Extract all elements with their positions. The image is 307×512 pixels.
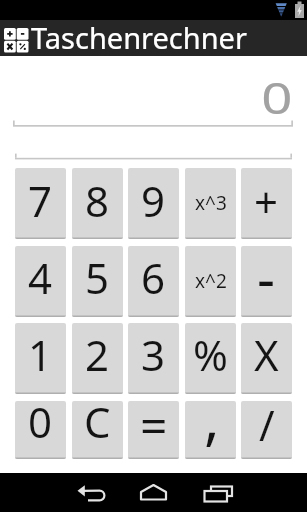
staticText: C <box>84 401 111 450</box>
staticText: / <box>259 401 275 453</box>
button[interactable]: 6 <box>128 246 179 317</box>
button[interactable] <box>0 473 103 512</box>
button[interactable]: 3 <box>128 323 179 394</box>
staticText: 3 <box>141 326 166 383</box>
staticText: 9 <box>141 172 166 229</box>
staticText: X <box>254 326 279 383</box>
staticText: 6 <box>141 249 166 306</box>
staticText: 2 <box>85 326 110 383</box>
button[interactable]: 9 <box>128 168 179 239</box>
button[interactable]: 4 <box>15 246 66 317</box>
button[interactable]: C <box>72 401 123 459</box>
button[interactable]: x^2 <box>185 246 236 317</box>
button[interactable]: / <box>241 401 292 459</box>
button[interactable]: 0 <box>15 401 66 459</box>
staticText: 5 <box>85 249 110 306</box>
staticText: 4 <box>28 249 53 306</box>
button[interactable]: 1 <box>15 323 66 394</box>
button[interactable]: Taschenrechner <box>0 20 307 56</box>
button[interactable]: = <box>128 401 179 459</box>
staticText: Taschenrechner <box>31 18 247 54</box>
button[interactable] <box>13 60 293 126</box>
button[interactable]: 8 <box>72 168 123 239</box>
staticText: 1 <box>28 326 53 383</box>
button[interactable]: % <box>185 323 236 394</box>
staticText: 8 <box>85 172 110 229</box>
button[interactable]: 5 <box>72 246 123 317</box>
staticText: - <box>257 246 276 310</box>
staticText: x^3 <box>195 190 227 216</box>
staticText: , <box>204 377 220 456</box>
staticText: + <box>254 173 279 230</box>
staticText: 7 <box>28 172 53 229</box>
button[interactable] <box>103 473 205 512</box>
button[interactable] <box>185 401 236 459</box>
button[interactable]: 7 <box>15 168 66 239</box>
button[interactable]: x^3 <box>185 168 236 239</box>
staticText: = <box>140 401 168 450</box>
button[interactable]: 2 <box>72 323 123 394</box>
staticText: 0 <box>28 401 53 450</box>
button[interactable]: + <box>241 168 292 239</box>
staticText: x^2 <box>195 268 227 294</box>
button[interactable]: X <box>241 323 292 394</box>
button[interactable] <box>205 473 307 512</box>
staticText: 0 <box>261 68 293 127</box>
staticText: % <box>193 326 228 383</box>
button[interactable]: - <box>241 246 292 317</box>
